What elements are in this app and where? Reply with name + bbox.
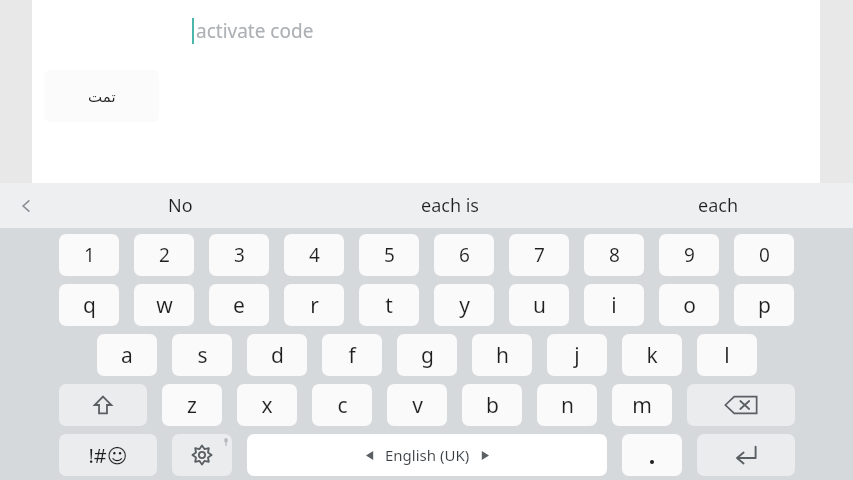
button[interactable]: Period bbox=[622, 434, 682, 476]
staticText: o bbox=[683, 291, 696, 320]
staticText: y bbox=[459, 291, 470, 320]
button[interactable]: n bbox=[537, 384, 597, 426]
staticText: s bbox=[197, 341, 208, 370]
staticText: each bbox=[698, 193, 739, 218]
button[interactable]: x bbox=[237, 384, 297, 426]
staticText: x bbox=[261, 391, 273, 420]
button[interactable]: 1 bbox=[59, 234, 119, 276]
button[interactable]: activate code bbox=[196, 18, 314, 44]
button[interactable]: No bbox=[46, 183, 315, 228]
button[interactable]: p bbox=[734, 284, 794, 326]
staticText: d bbox=[271, 341, 284, 370]
staticText: 8 bbox=[609, 242, 620, 268]
button[interactable]: c bbox=[312, 384, 372, 426]
staticText: 5 bbox=[384, 242, 395, 268]
staticText: w bbox=[156, 291, 173, 320]
button[interactable]: b bbox=[462, 384, 522, 426]
staticText: n bbox=[561, 391, 574, 420]
button[interactable]: y bbox=[434, 284, 494, 326]
button[interactable]: s bbox=[172, 334, 232, 376]
button[interactable]: l bbox=[697, 334, 757, 376]
staticText: l bbox=[724, 341, 730, 370]
staticText: c bbox=[337, 391, 348, 420]
button[interactable]: 0 bbox=[734, 234, 794, 276]
staticText: 0 bbox=[759, 242, 770, 268]
staticText: b bbox=[486, 391, 499, 420]
staticText: p bbox=[758, 291, 771, 320]
button[interactable]: Enter bbox=[697, 434, 795, 476]
button[interactable]: each bbox=[584, 183, 853, 228]
staticText: 1 bbox=[84, 242, 95, 268]
button[interactable]: 4 bbox=[284, 234, 344, 276]
button[interactable]: 7 bbox=[509, 234, 569, 276]
button[interactable]: g bbox=[397, 334, 457, 376]
staticText: f bbox=[348, 341, 356, 370]
staticText: English (UK) bbox=[385, 445, 470, 465]
button[interactable]: v bbox=[387, 384, 447, 426]
button[interactable]: تمت bbox=[45, 70, 159, 122]
staticText: !#☺ bbox=[88, 442, 128, 469]
staticText: a bbox=[121, 341, 133, 370]
staticText: 3 bbox=[234, 242, 245, 268]
button[interactable]: f bbox=[322, 334, 382, 376]
button[interactable]: o bbox=[659, 284, 719, 326]
button[interactable]: English (UK) bbox=[247, 434, 607, 476]
button[interactable]: each is bbox=[315, 183, 584, 228]
button[interactable]: Back bbox=[10, 190, 42, 222]
staticText: r bbox=[310, 291, 319, 320]
button[interactable]: 6 bbox=[434, 234, 494, 276]
button[interactable]: m bbox=[612, 384, 672, 426]
staticText: 2 bbox=[159, 242, 170, 268]
staticText: v bbox=[412, 391, 423, 420]
button[interactable]: 5 bbox=[359, 234, 419, 276]
button[interactable]: z bbox=[162, 384, 222, 426]
button[interactable]: h bbox=[472, 334, 532, 376]
button[interactable]: Backspace bbox=[687, 384, 795, 426]
staticText: z bbox=[187, 391, 197, 420]
button[interactable]: q bbox=[59, 284, 119, 326]
staticText: i bbox=[611, 291, 617, 320]
staticText: u bbox=[533, 291, 546, 320]
button[interactable]: Settings bbox=[172, 434, 232, 476]
button[interactable]: e bbox=[209, 284, 269, 326]
button[interactable]: 8 bbox=[584, 234, 644, 276]
button[interactable]: t bbox=[359, 284, 419, 326]
staticText: activate code bbox=[196, 18, 314, 44]
button[interactable]: r bbox=[284, 284, 344, 326]
staticText: 7 bbox=[534, 242, 545, 268]
button[interactable]: d bbox=[247, 334, 307, 376]
staticText: j bbox=[574, 341, 580, 370]
button[interactable]: 3 bbox=[209, 234, 269, 276]
staticText: g bbox=[421, 341, 434, 370]
staticText: 9 bbox=[684, 242, 695, 268]
staticText: No bbox=[168, 193, 193, 218]
button[interactable]: 9 bbox=[659, 234, 719, 276]
button[interactable]: Symbols and emoji bbox=[59, 434, 157, 476]
staticText: m bbox=[632, 391, 652, 420]
staticText: 4 bbox=[309, 242, 320, 268]
button[interactable]: j bbox=[547, 334, 607, 376]
button[interactable]: w bbox=[134, 284, 194, 326]
button[interactable]: k bbox=[622, 334, 682, 376]
staticText: e bbox=[233, 291, 245, 320]
button[interactable]: 2 bbox=[134, 234, 194, 276]
staticText: h bbox=[496, 341, 509, 370]
staticText: تمت bbox=[88, 88, 116, 105]
button[interactable]: i bbox=[584, 284, 644, 326]
staticText: each is bbox=[421, 193, 479, 218]
staticText: t bbox=[385, 291, 393, 320]
button[interactable]: Shift bbox=[59, 384, 147, 426]
staticText: q bbox=[83, 291, 96, 320]
button[interactable]: a bbox=[97, 334, 157, 376]
button[interactable]: u bbox=[509, 284, 569, 326]
staticText: 6 bbox=[459, 242, 470, 268]
staticText: k bbox=[646, 341, 658, 370]
